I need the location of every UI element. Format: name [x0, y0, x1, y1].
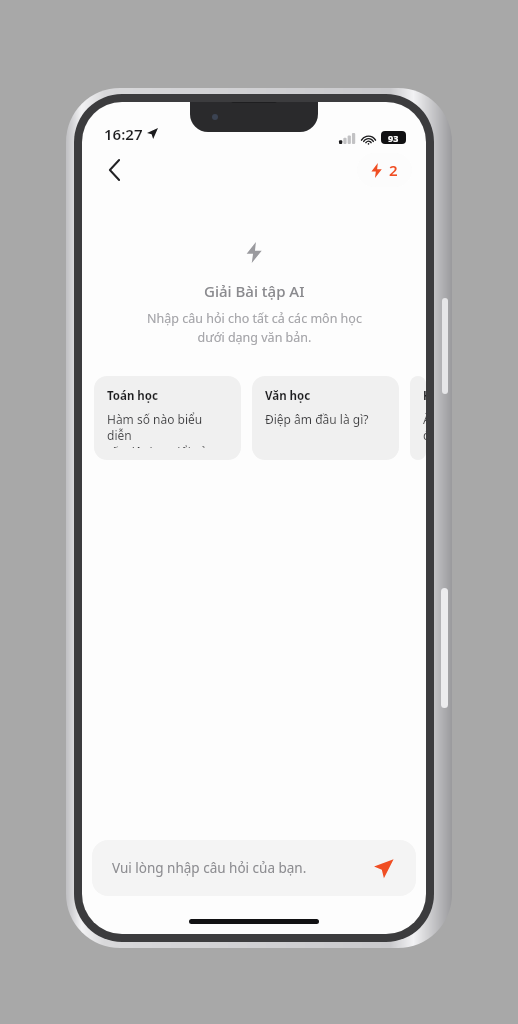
- staticText: 93: [388, 132, 399, 144]
- staticText: Hàm số nào biểu diễn tốc độ thay đổi của…: [107, 411, 228, 448]
- staticText: Văn học: [265, 388, 311, 404]
- other: Send: [368, 853, 398, 883]
- button[interactable]: Vui lòng nhập câu hỏi của bạn.: [92, 840, 416, 896]
- staticText: Giải Bài tập AI: [204, 281, 305, 301]
- staticText: 2: [389, 160, 398, 180]
- staticText: Toán học: [107, 388, 158, 404]
- button[interactable]: Back: [94, 150, 134, 190]
- button[interactable]: K: [410, 376, 426, 460]
- button[interactable]: 2: [357, 153, 412, 187]
- button[interactable]: Văn học: [252, 376, 399, 460]
- staticText: Vui lòng nhập câu hỏi của bạn.: [112, 859, 307, 877]
- staticText: Nhập câu hỏi cho tất cả các môn học dưới…: [147, 310, 362, 346]
- staticText: 16:27: [104, 124, 143, 144]
- staticText: Điệp âm đầu là gì?: [265, 411, 369, 427]
- button[interactable]: Toán học: [94, 376, 241, 460]
